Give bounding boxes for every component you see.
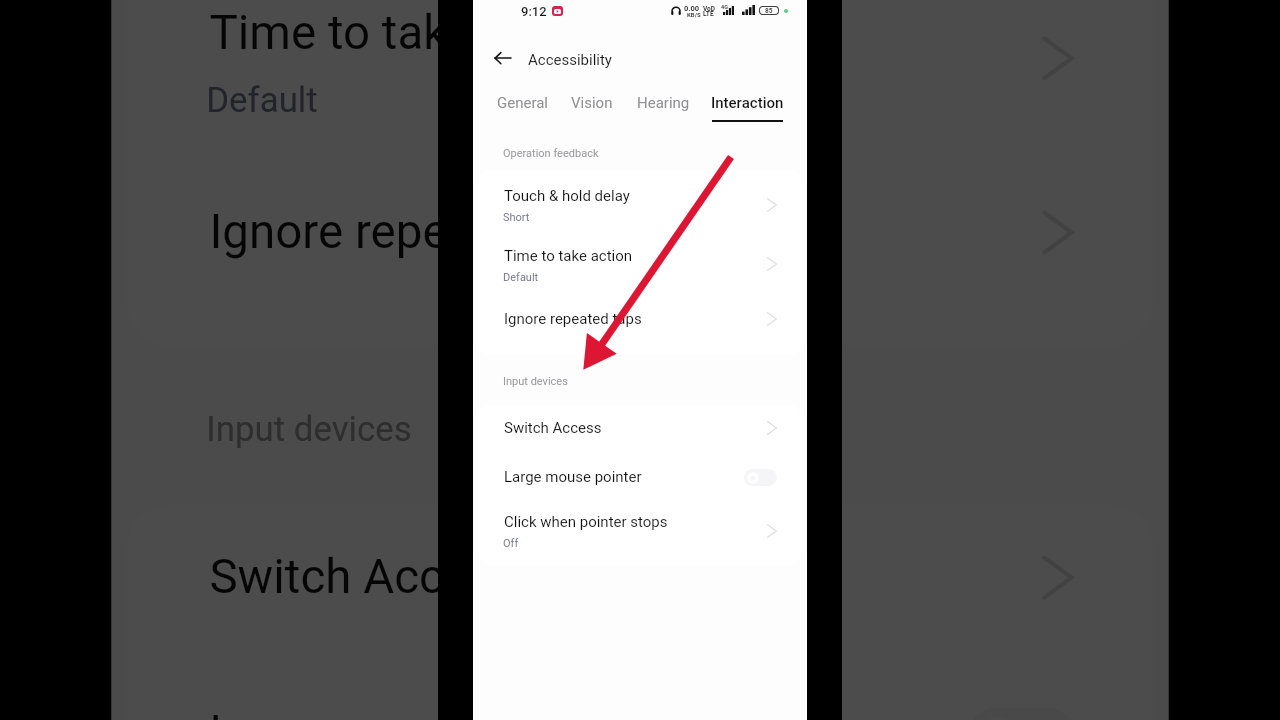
- staticText: Click when pointer stops: [504, 513, 668, 531]
- staticText: Hearing: [637, 94, 690, 112]
- staticText: LTE: [703, 10, 714, 18]
- staticText: Switch Access: [209, 549, 520, 606]
- button[interactable]: Switch Access: [127, 505, 1153, 657]
- staticText: Large mouse pointer: [504, 468, 642, 486]
- staticText: Time to take action: [504, 247, 633, 265]
- button[interactable]: Touch & hold delay: [478, 170, 802, 232]
- staticText: 85: [765, 7, 773, 14]
- button[interactable]: General: [488, 88, 557, 126]
- button[interactable]: Time to take action: [478, 232, 802, 294]
- staticText: Time to take action: [209, 4, 618, 61]
- staticText: Ignore repeated taps: [504, 310, 642, 328]
- staticText: KB/S: [687, 11, 701, 18]
- staticText: Input devices: [503, 375, 568, 388]
- button[interactable]: Large mouse pointer: [478, 453, 802, 501]
- staticText: Interaction: [711, 94, 784, 112]
- button[interactable]: Time to take action: [127, 0, 1153, 153]
- staticText: 4G: [721, 4, 728, 10]
- button[interactable]: Large mouse pointer, off: [744, 469, 777, 486]
- button[interactable]: Vision: [562, 88, 621, 126]
- button[interactable]: Hearing: [628, 88, 698, 126]
- staticText: Ignore repeated taps: [209, 204, 646, 261]
- button[interactable]: Back: [483, 44, 523, 72]
- button[interactable]: Ignore repeated taps: [478, 294, 802, 355]
- staticText: Short: [503, 211, 530, 224]
- staticText: 0.00: [684, 4, 700, 13]
- button[interactable]: Ignore repeated taps: [127, 153, 1153, 346]
- staticText: Operation feedback: [503, 147, 599, 160]
- staticText: Input devices: [206, 410, 412, 451]
- staticText: Default: [503, 271, 539, 284]
- staticText: Default: [206, 80, 320, 122]
- button[interactable]: Switch Access: [478, 405, 802, 453]
- button[interactable]: Click when pointer stops: [478, 501, 802, 565]
- staticText: Accessibility: [528, 51, 612, 69]
- staticText: VoD: [703, 5, 716, 13]
- staticText: Switch Access: [504, 419, 602, 437]
- staticText: Off: [503, 537, 519, 550]
- staticText: 9:12: [521, 4, 547, 19]
- staticText: Touch & hold delay: [504, 187, 630, 205]
- staticText: Vision: [571, 94, 613, 112]
- button[interactable]: Interaction: [703, 88, 792, 126]
- button[interactable]: Large mouse pointer: [127, 657, 1153, 720]
- staticText: Large mouse pointer: [209, 704, 646, 720]
- staticText: General: [497, 94, 549, 112]
